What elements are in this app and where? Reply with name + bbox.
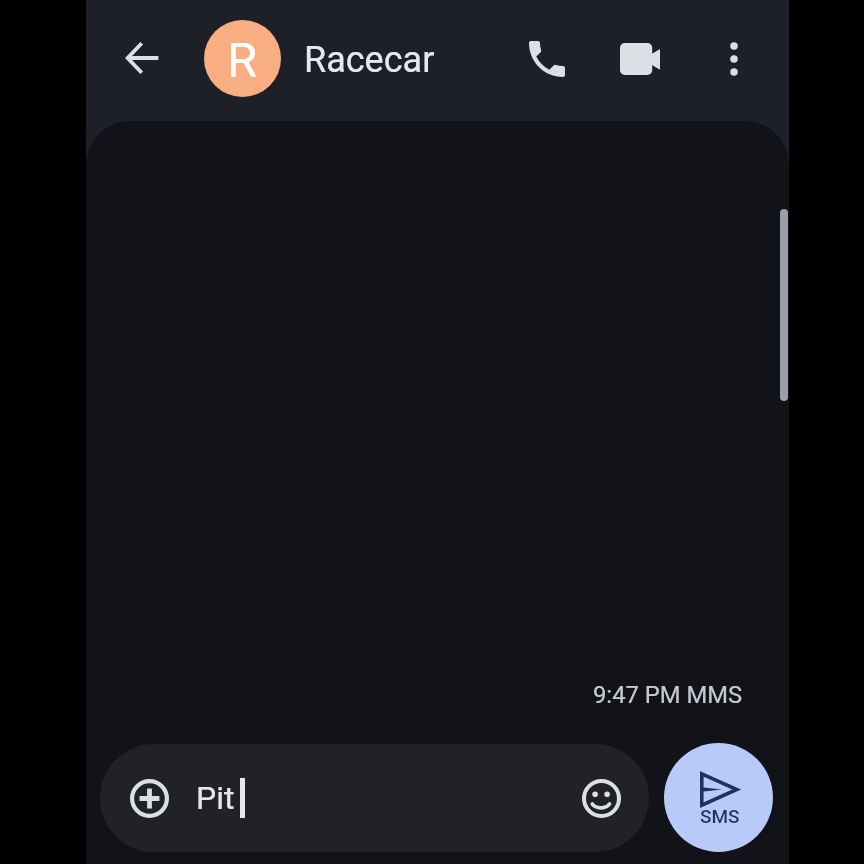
- staticText: R: [227, 32, 258, 89]
- button[interactable]: More options: [702, 27, 766, 91]
- button[interactable]: Send SMS: [664, 743, 773, 852]
- button[interactable]: Racecar: [301, 0, 432, 121]
- staticText: SMS: [700, 805, 740, 827]
- button[interactable]: Contact photo: [204, 20, 281, 97]
- button[interactable]: Attach: [100, 744, 649, 852]
- staticText: 9:47 PM MMS: [593, 681, 743, 709]
- staticText: Pit: [196, 779, 235, 817]
- button[interactable]: Attach: [125, 774, 173, 822]
- button[interactable]: Video call: [606, 27, 670, 91]
- button[interactable]: Back: [111, 26, 175, 90]
- staticText: Racecar: [304, 39, 435, 81]
- button[interactable]: Emoji: [577, 774, 625, 822]
- button[interactable]: Call: [515, 27, 579, 91]
